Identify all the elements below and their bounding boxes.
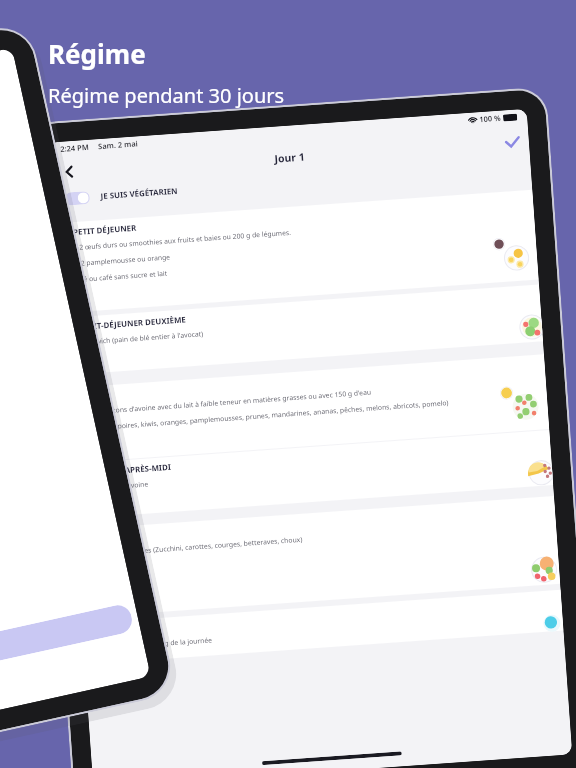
staticText: Sandwich (pain de blé entier à l'avocat) — [80, 329, 204, 347]
staticText: 150 g flocons d'avoine avec du lait à fa… — [85, 388, 371, 417]
staticText: 1/2 pamplemousse ou orange — [74, 252, 170, 268]
button[interactable]: PETIT DÉJEUNER — [53, 190, 539, 313]
staticText: THÉ DE L'APRÈS-MIDI — [90, 462, 171, 479]
staticText: Jour 1 — [274, 150, 306, 166]
staticText: DÎNER — [84, 390, 110, 403]
staticText: Régime — [48, 36, 146, 71]
staticText: 2:24 PM — [60, 142, 89, 154]
button[interactable]: EAU — [82, 590, 563, 664]
staticText: Sam. 2 mai — [98, 138, 138, 151]
staticText: Régime pendant 30 jours — [48, 82, 285, 109]
staticText: 2 l d'eau tout au long de la journée — [101, 635, 213, 652]
button[interactable]: DÎNER — [65, 354, 549, 463]
button[interactable] — [0, 602, 135, 693]
staticText: PETIT DÉJEUNER — [73, 223, 137, 238]
button[interactable]: PETIT-DÉJEUNER DEUXIÈME — [60, 284, 543, 375]
button[interactable]: THÉ DE L'APRÈS-MIDI — [70, 430, 553, 519]
button[interactable]: SOUPER — [75, 496, 560, 618]
staticText: Pommes, poires, kiwis, oranges, pamplemo… — [86, 398, 449, 433]
staticText: JE SUIS VÉGÉTARIEN — [100, 186, 179, 202]
button[interactable]: Retour — [57, 160, 81, 183]
staticText: 1 biscuit à l'avoine — [90, 479, 149, 493]
button[interactable]: Valider — [500, 130, 524, 154]
staticText: 100 % — [479, 113, 501, 124]
staticText: EAU — [101, 626, 118, 638]
staticText: 1-2 œufs durs ou smoothies aux fruits et… — [73, 228, 292, 252]
staticText: PETIT-DÉJEUNER DEUXIÈME — [79, 314, 187, 333]
button[interactable]: JE SUIS VÉGÉTARIEN — [64, 179, 179, 211]
staticText: 200 g de légumes (Zucchini, carottes, co… — [95, 535, 303, 558]
staticText: SOUPER — [94, 531, 127, 544]
staticText: Thé ou café sans sucre et lait — [75, 269, 168, 284]
